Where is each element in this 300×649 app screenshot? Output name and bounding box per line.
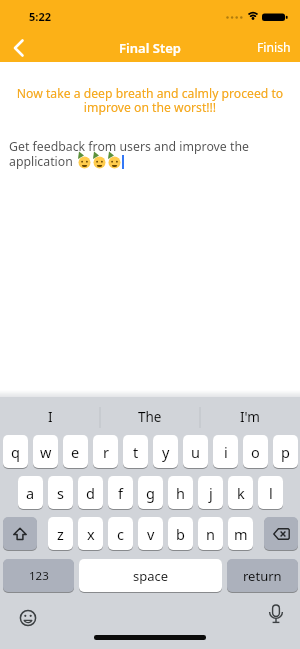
staticText: f xyxy=(118,483,123,503)
button[interactable]: h xyxy=(168,476,193,510)
staticText: a xyxy=(26,483,35,503)
button[interactable]: m xyxy=(228,517,253,551)
staticText: w xyxy=(40,442,52,462)
button[interactable]: t xyxy=(123,435,148,469)
staticText: Final Step xyxy=(0,39,300,57)
staticText: e xyxy=(71,442,80,462)
staticText: l xyxy=(269,483,273,503)
button[interactable]: u xyxy=(183,435,208,469)
staticText: g xyxy=(146,483,155,503)
button[interactable] xyxy=(4,34,34,62)
button[interactable]: 123 xyxy=(3,559,74,593)
staticText: v xyxy=(147,524,155,544)
staticText: h xyxy=(176,483,185,503)
staticText: p xyxy=(281,442,290,462)
staticText: x xyxy=(87,524,95,544)
button[interactable]: Finish xyxy=(250,36,298,58)
staticText: I xyxy=(48,408,53,426)
staticText: Now take a deep breath and calmly procee… xyxy=(0,85,300,115)
staticText: n xyxy=(206,524,215,544)
staticText: u xyxy=(191,442,200,462)
button[interactable]: i xyxy=(213,435,238,469)
staticText: z xyxy=(57,524,64,544)
button[interactable]: f xyxy=(108,476,133,510)
staticText: Get feedback from users and improve the xyxy=(9,138,249,155)
button[interactable]: y xyxy=(153,435,178,469)
staticText: i xyxy=(224,442,228,462)
button[interactable]: x xyxy=(78,517,103,551)
button[interactable]: w xyxy=(33,435,58,469)
button[interactable]: q xyxy=(3,435,28,469)
staticText: space xyxy=(133,567,169,585)
button[interactable]: j xyxy=(198,476,223,510)
button[interactable]: n xyxy=(198,517,223,551)
staticText: 5:22 xyxy=(29,9,51,24)
staticText: d xyxy=(86,483,95,503)
staticText: return xyxy=(243,567,282,585)
staticText: 123 xyxy=(29,568,49,584)
button[interactable]: s xyxy=(48,476,73,510)
staticText: r xyxy=(103,442,109,462)
staticText: q xyxy=(11,442,20,462)
staticText: application xyxy=(9,153,77,170)
button[interactable]: r xyxy=(93,435,118,469)
button[interactable]: l xyxy=(258,476,283,510)
staticText: b xyxy=(176,524,185,544)
staticText: y xyxy=(162,442,170,462)
button[interactable] xyxy=(262,602,290,630)
button[interactable] xyxy=(14,604,42,632)
button[interactable]: z xyxy=(48,517,73,551)
button[interactable]: The xyxy=(100,398,200,436)
button[interactable]: b xyxy=(168,517,193,551)
button[interactable]: v xyxy=(138,517,163,551)
button[interactable]: a xyxy=(18,476,43,510)
staticText: s xyxy=(57,483,64,503)
button[interactable]: c xyxy=(108,517,133,551)
button[interactable]: e xyxy=(63,435,88,469)
staticText: c xyxy=(117,524,124,544)
button[interactable] xyxy=(264,517,298,551)
staticText: The xyxy=(138,408,162,426)
button[interactable] xyxy=(3,517,37,551)
button[interactable]: g xyxy=(138,476,163,510)
staticText: Finish xyxy=(257,39,291,56)
staticText: k xyxy=(237,483,245,503)
button[interactable]: d xyxy=(78,476,103,510)
button[interactable]: space xyxy=(79,559,222,593)
staticText: o xyxy=(251,442,260,462)
staticText: t xyxy=(133,442,139,462)
button[interactable]: I xyxy=(0,398,100,436)
button[interactable]: return xyxy=(227,559,298,593)
staticText: j xyxy=(209,483,213,503)
button[interactable]: o xyxy=(243,435,268,469)
button[interactable]: I'm xyxy=(200,398,300,436)
button[interactable]: p xyxy=(273,435,298,469)
button[interactable]: k xyxy=(228,476,253,510)
staticText: I'm xyxy=(240,408,260,426)
staticText: m xyxy=(234,524,248,544)
